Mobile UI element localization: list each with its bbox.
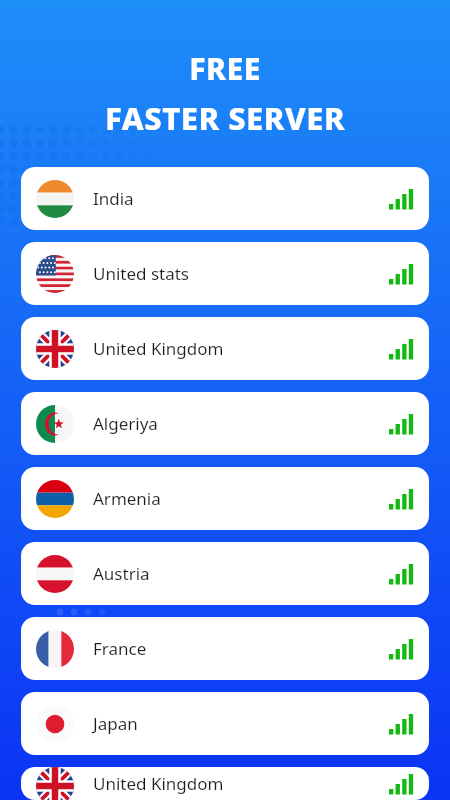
other: Signal strength <box>389 712 414 736</box>
staticText: United Kingdom <box>93 772 224 795</box>
other: Signal strength <box>389 772 414 796</box>
staticText: India <box>93 187 134 210</box>
button[interactable]: Austria <box>21 542 429 605</box>
staticText: Algeriya <box>93 412 158 435</box>
other: Signal strength <box>389 562 414 586</box>
staticText: United stats <box>93 262 190 285</box>
staticText: Armenia <box>93 487 161 510</box>
other: Signal strength <box>389 487 414 511</box>
staticText: Austria <box>93 562 150 585</box>
button[interactable]: United Kingdom <box>21 317 429 380</box>
other: Signal strength <box>389 412 414 436</box>
staticText: Japan <box>93 712 138 735</box>
staticText: FASTER SERVER <box>0 97 450 139</box>
button[interactable]: France <box>21 617 429 680</box>
staticText: United Kingdom <box>93 337 224 360</box>
button[interactable]: India <box>21 167 429 230</box>
button[interactable]: Algeriya <box>21 392 429 455</box>
other: Signal strength <box>389 262 414 286</box>
staticText: FREE <box>0 48 450 89</box>
button[interactable]: Japan <box>21 692 429 755</box>
other: Signal strength <box>389 637 414 661</box>
button[interactable]: United Kingdom <box>21 767 429 800</box>
staticText: France <box>93 637 147 660</box>
other: Signal strength <box>389 187 414 211</box>
button[interactable]: Armenia <box>21 467 429 530</box>
other: Signal strength <box>389 337 414 361</box>
button[interactable]: United stats <box>21 242 429 305</box>
